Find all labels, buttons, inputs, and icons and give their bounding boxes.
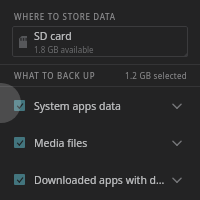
button[interactable]: Expand Media files	[167, 133, 187, 153]
staticText: WHERE TO STORE DATA	[14, 11, 116, 22]
staticText: Media files	[34, 136, 167, 150]
staticText: WHAT TO BACK UP	[14, 70, 96, 81]
staticText: 1.2 GB selected	[125, 70, 188, 81]
button[interactable]: Toggle Downloaded apps with data	[14, 174, 25, 185]
staticText: SD card	[34, 29, 72, 43]
button[interactable]: Toggle Downloaded apps with data	[0, 161, 200, 198]
staticText: Downloaded apps with data	[34, 173, 167, 187]
button[interactable]: Expand System apps data	[167, 96, 187, 116]
button[interactable]: Toggle System apps data	[14, 100, 25, 111]
button[interactable]: Toggle System apps data	[0, 87, 200, 124]
button[interactable]: SD card	[12, 26, 188, 57]
button[interactable]: Toggle Media files	[14, 137, 25, 148]
button[interactable]: Toggle Media files	[0, 124, 200, 161]
other: SD card	[19, 36, 27, 48]
staticText: System apps data	[34, 99, 167, 113]
button[interactable]: Expand Downloaded apps with data	[167, 170, 187, 190]
staticText: 1.8 GB available	[34, 44, 94, 55]
